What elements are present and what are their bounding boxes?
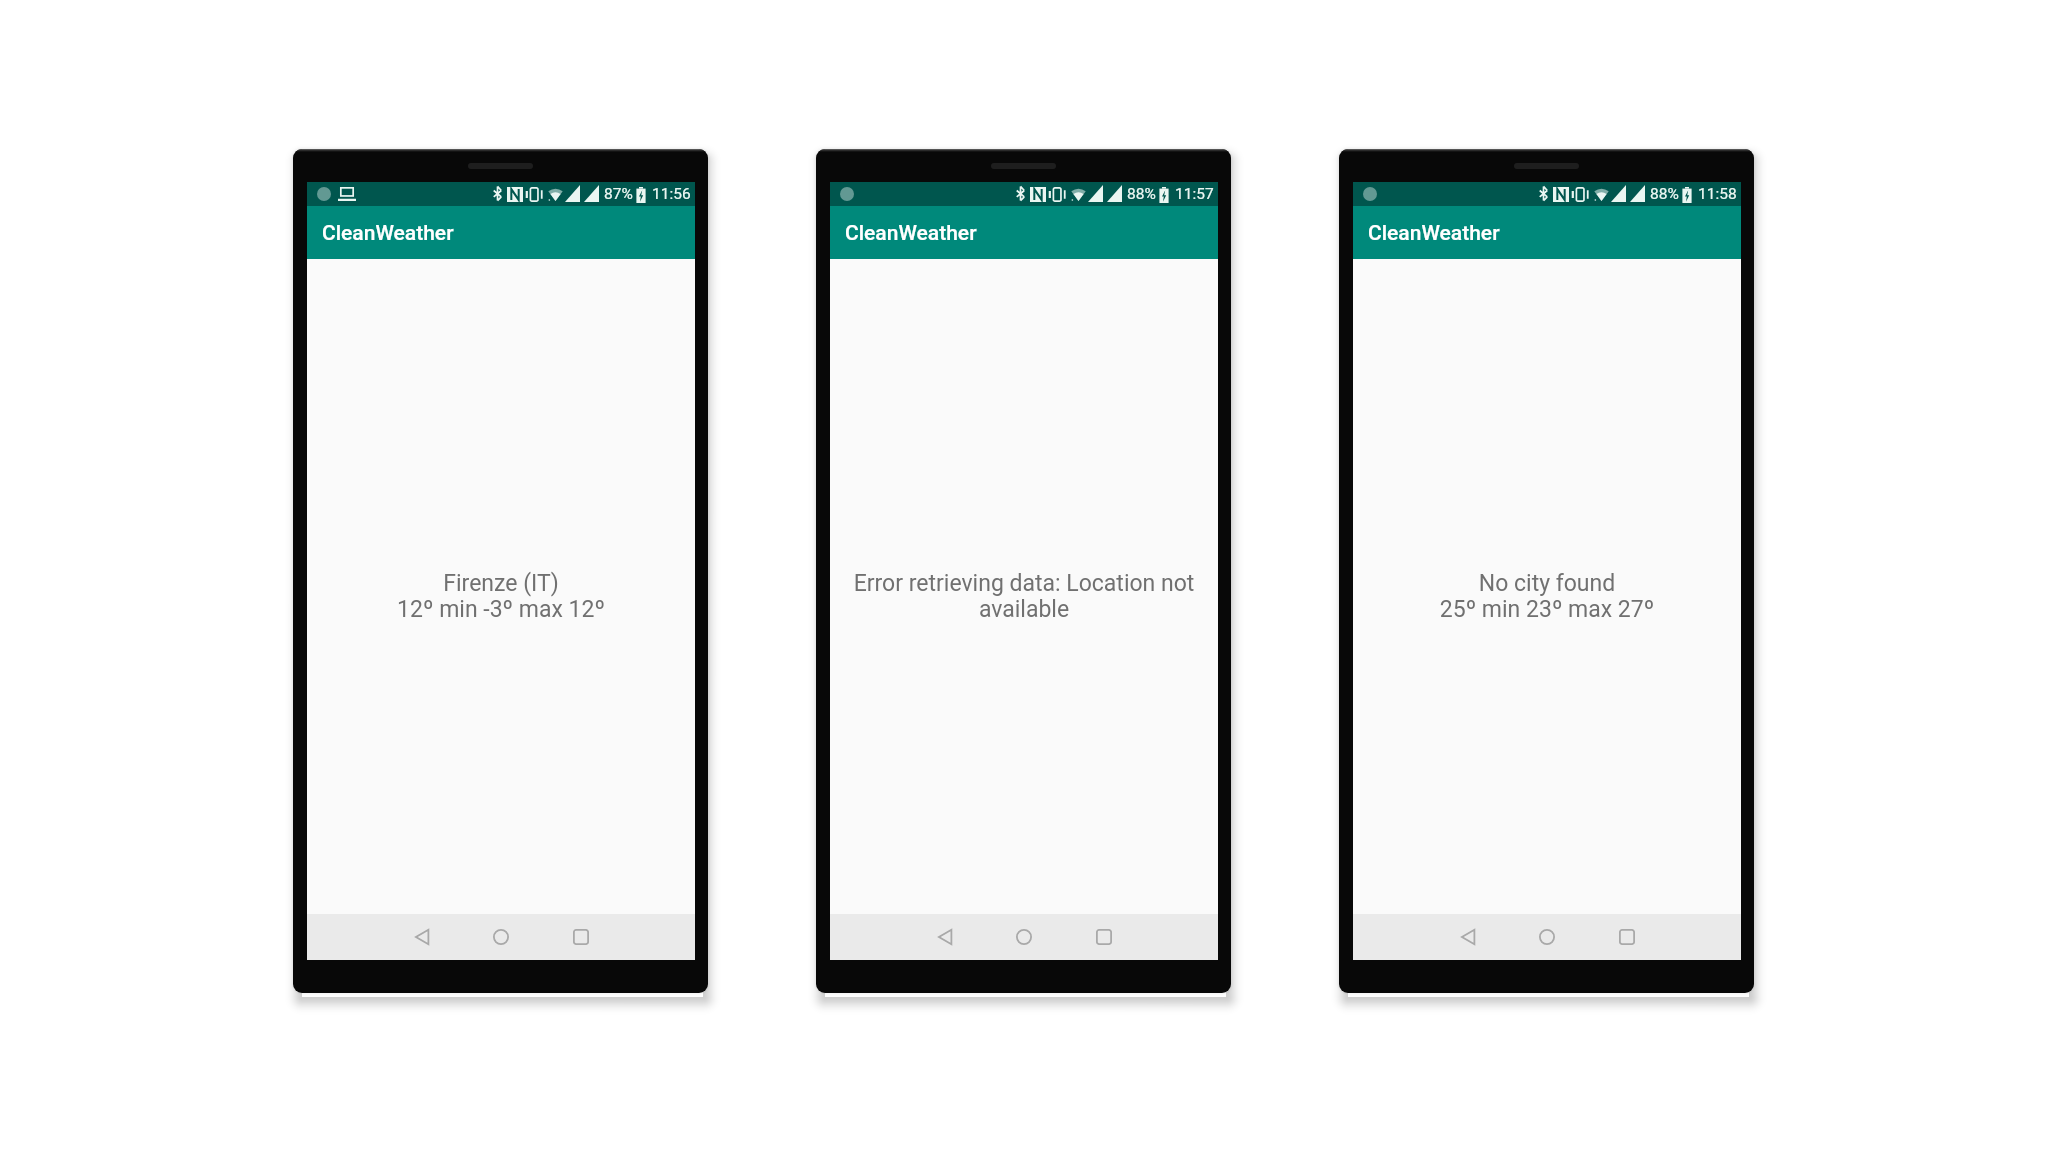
button[interactable]: Back bbox=[914, 914, 976, 960]
staticText: Error retrieving data: Location not avai… bbox=[848, 570, 1200, 622]
staticText: No city found 25º min 23º max 27º bbox=[1371, 570, 1723, 622]
button[interactable]: Recents bbox=[1596, 914, 1658, 960]
button[interactable]: Recents bbox=[1073, 914, 1135, 960]
button[interactable]: Back bbox=[391, 914, 453, 960]
staticText: Firenze (IT) 12º min -3º max 12º bbox=[325, 570, 677, 622]
staticText: CleanWeather bbox=[322, 221, 454, 246]
button[interactable]: Home bbox=[470, 914, 532, 960]
button[interactable]: Recents bbox=[550, 914, 612, 960]
button[interactable]: CleanWeather bbox=[1353, 206, 1741, 259]
button[interactable]: Back bbox=[1437, 914, 1499, 960]
button[interactable]: CleanWeather bbox=[307, 206, 695, 259]
staticText: CleanWeather bbox=[1368, 221, 1500, 246]
button[interactable]: Home bbox=[1516, 914, 1578, 960]
staticText: CleanWeather bbox=[845, 221, 977, 246]
staticText: 88% bbox=[1127, 185, 1156, 203]
staticText: 88% bbox=[1650, 185, 1679, 203]
button[interactable]: CleanWeather bbox=[830, 206, 1218, 259]
staticText: 11:58 bbox=[1698, 185, 1737, 203]
staticText: 11:57 bbox=[1175, 185, 1214, 203]
staticText: 11:56 bbox=[652, 185, 691, 203]
button[interactable]: Home bbox=[993, 914, 1055, 960]
staticText: 87% bbox=[604, 185, 633, 203]
